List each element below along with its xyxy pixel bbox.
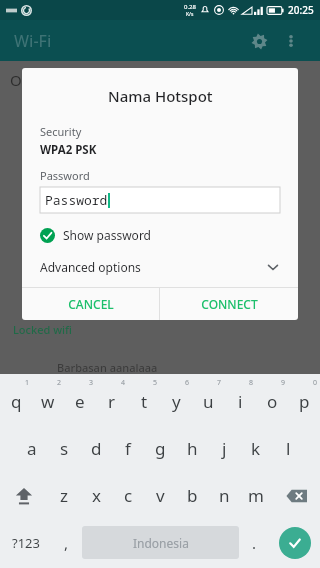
- staticText: 5: [153, 378, 158, 388]
- button[interactable]: m: [240, 472, 272, 519]
- button[interactable]: b: [176, 472, 208, 519]
- staticText: i: [238, 390, 243, 413]
- staticText: h: [187, 437, 198, 460]
- button[interactable]: x: [80, 472, 112, 519]
- button[interactable]: Show password: [40, 227, 280, 243]
- button[interactable]: l: [272, 425, 304, 472]
- button[interactable]: n: [208, 472, 240, 519]
- staticText: b: [187, 484, 198, 507]
- staticText: c: [124, 484, 133, 507]
- staticText: CANCEL: [68, 296, 114, 312]
- staticText: 8: [249, 378, 254, 388]
- button[interactable]: d: [80, 425, 112, 472]
- button[interactable]: i: [224, 378, 256, 425]
- staticText: k: [251, 437, 261, 460]
- button[interactable]: y: [160, 378, 192, 425]
- staticText: Barbasan aanalaaa: [57, 360, 158, 375]
- button[interactable]: f: [112, 425, 144, 472]
- staticText: Security: [40, 124, 82, 139]
- button[interactable]: CANCEL: [22, 288, 159, 320]
- button[interactable]: .: [239, 519, 270, 566]
- button[interactable]: w: [32, 378, 64, 425]
- button[interactable]: Enter: [270, 519, 320, 566]
- button[interactable]: ?123: [0, 519, 51, 566]
- staticText: Password: [45, 191, 108, 209]
- button[interactable]: Indonesia: [82, 526, 239, 559]
- staticText: d: [91, 437, 102, 460]
- staticText: s: [60, 437, 69, 460]
- staticText: CONNECT: [201, 296, 258, 312]
- staticText: Password: [40, 168, 90, 183]
- staticText: WPA2 PSK: [40, 142, 97, 158]
- staticText: 0: [313, 378, 318, 388]
- staticText: e: [75, 390, 85, 413]
- staticText: 7: [217, 378, 222, 388]
- staticText: 20:25: [288, 3, 314, 17]
- button[interactable]: c: [112, 472, 144, 519]
- staticText: .: [252, 533, 257, 553]
- staticText: 4: [121, 378, 126, 388]
- button[interactable]: q: [0, 378, 32, 425]
- button[interactable]: t: [128, 378, 160, 425]
- staticText: 9: [281, 378, 286, 388]
- staticText: w: [41, 390, 55, 413]
- button[interactable]: Settings: [242, 24, 276, 58]
- staticText: ?123: [12, 534, 40, 552]
- staticText: m: [248, 484, 264, 507]
- staticText: t: [141, 390, 148, 413]
- staticText: z: [60, 484, 68, 507]
- staticText: a: [27, 437, 37, 460]
- staticText: 1: [25, 378, 30, 388]
- button[interactable]: e: [64, 378, 96, 425]
- staticText: n: [219, 484, 230, 507]
- button[interactable]: Backspace: [272, 472, 320, 519]
- staticText: g: [155, 437, 166, 460]
- button[interactable]: ,: [51, 519, 82, 566]
- staticText: K/s: [186, 11, 194, 18]
- staticText: y: [172, 390, 181, 413]
- button[interactable]: Password: [40, 187, 280, 213]
- staticText: Wi-Fi: [14, 30, 52, 52]
- button[interactable]: s: [48, 425, 80, 472]
- button[interactable]: v: [144, 472, 176, 519]
- staticText: ,: [64, 533, 69, 553]
- staticText: Locked wifi: [13, 322, 72, 337]
- button[interactable]: More options: [276, 26, 306, 56]
- button[interactable]: CONNECT: [160, 288, 298, 320]
- staticText: Nama Hotspot: [108, 86, 213, 106]
- staticText: p: [299, 390, 310, 413]
- button[interactable]: u: [192, 378, 224, 425]
- button[interactable]: Advanced options: [40, 259, 280, 275]
- button[interactable]: r: [96, 378, 128, 425]
- staticText: 0.28: [184, 3, 196, 11]
- staticText: 6: [185, 378, 190, 388]
- staticText: Advanced options: [40, 259, 141, 275]
- staticText: f: [125, 437, 131, 460]
- staticText: v: [156, 484, 165, 507]
- button[interactable]: p: [288, 378, 320, 425]
- button[interactable]: h: [176, 425, 208, 472]
- staticText: q: [11, 390, 22, 413]
- button[interactable]: g: [144, 425, 176, 472]
- staticText: r: [108, 390, 116, 413]
- staticText: Show password: [63, 227, 151, 243]
- staticText: u: [203, 390, 214, 413]
- button[interactable]: z: [48, 472, 80, 519]
- staticText: 3: [89, 378, 94, 388]
- staticText: Indonesia: [133, 535, 189, 551]
- button[interactable]: o: [256, 378, 288, 425]
- staticText: O: [10, 70, 22, 90]
- button[interactable]: Shift: [0, 472, 48, 519]
- staticText: o: [267, 390, 278, 413]
- button[interactable]: k: [240, 425, 272, 472]
- staticText: 2: [57, 378, 62, 388]
- button[interactable]: j: [208, 425, 240, 472]
- staticText: l: [286, 437, 291, 460]
- button[interactable]: a: [16, 425, 48, 472]
- staticText: x: [92, 484, 101, 507]
- staticText: j: [222, 437, 227, 460]
